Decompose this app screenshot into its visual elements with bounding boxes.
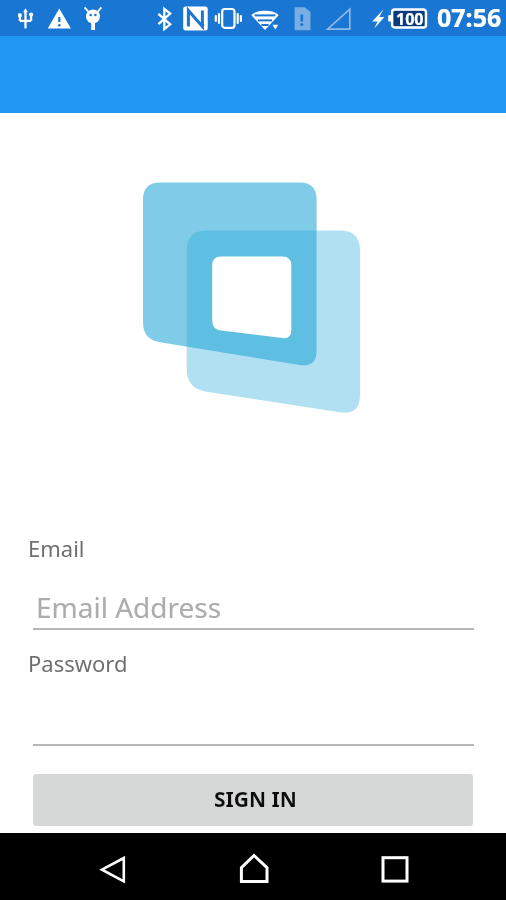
staticText: 07:56 (437, 0, 502, 34)
staticText: 100 (396, 8, 424, 30)
staticText: Email (28, 533, 85, 563)
staticText: Email Address (36, 588, 222, 626)
button[interactable]: Home (220, 833, 288, 900)
staticText: SIGN IN (214, 785, 297, 814)
button[interactable]: SIGN IN (33, 774, 473, 826)
staticText: Password (28, 648, 128, 678)
button[interactable]: Back (79, 833, 147, 900)
button[interactable]: Recent apps (360, 833, 428, 900)
